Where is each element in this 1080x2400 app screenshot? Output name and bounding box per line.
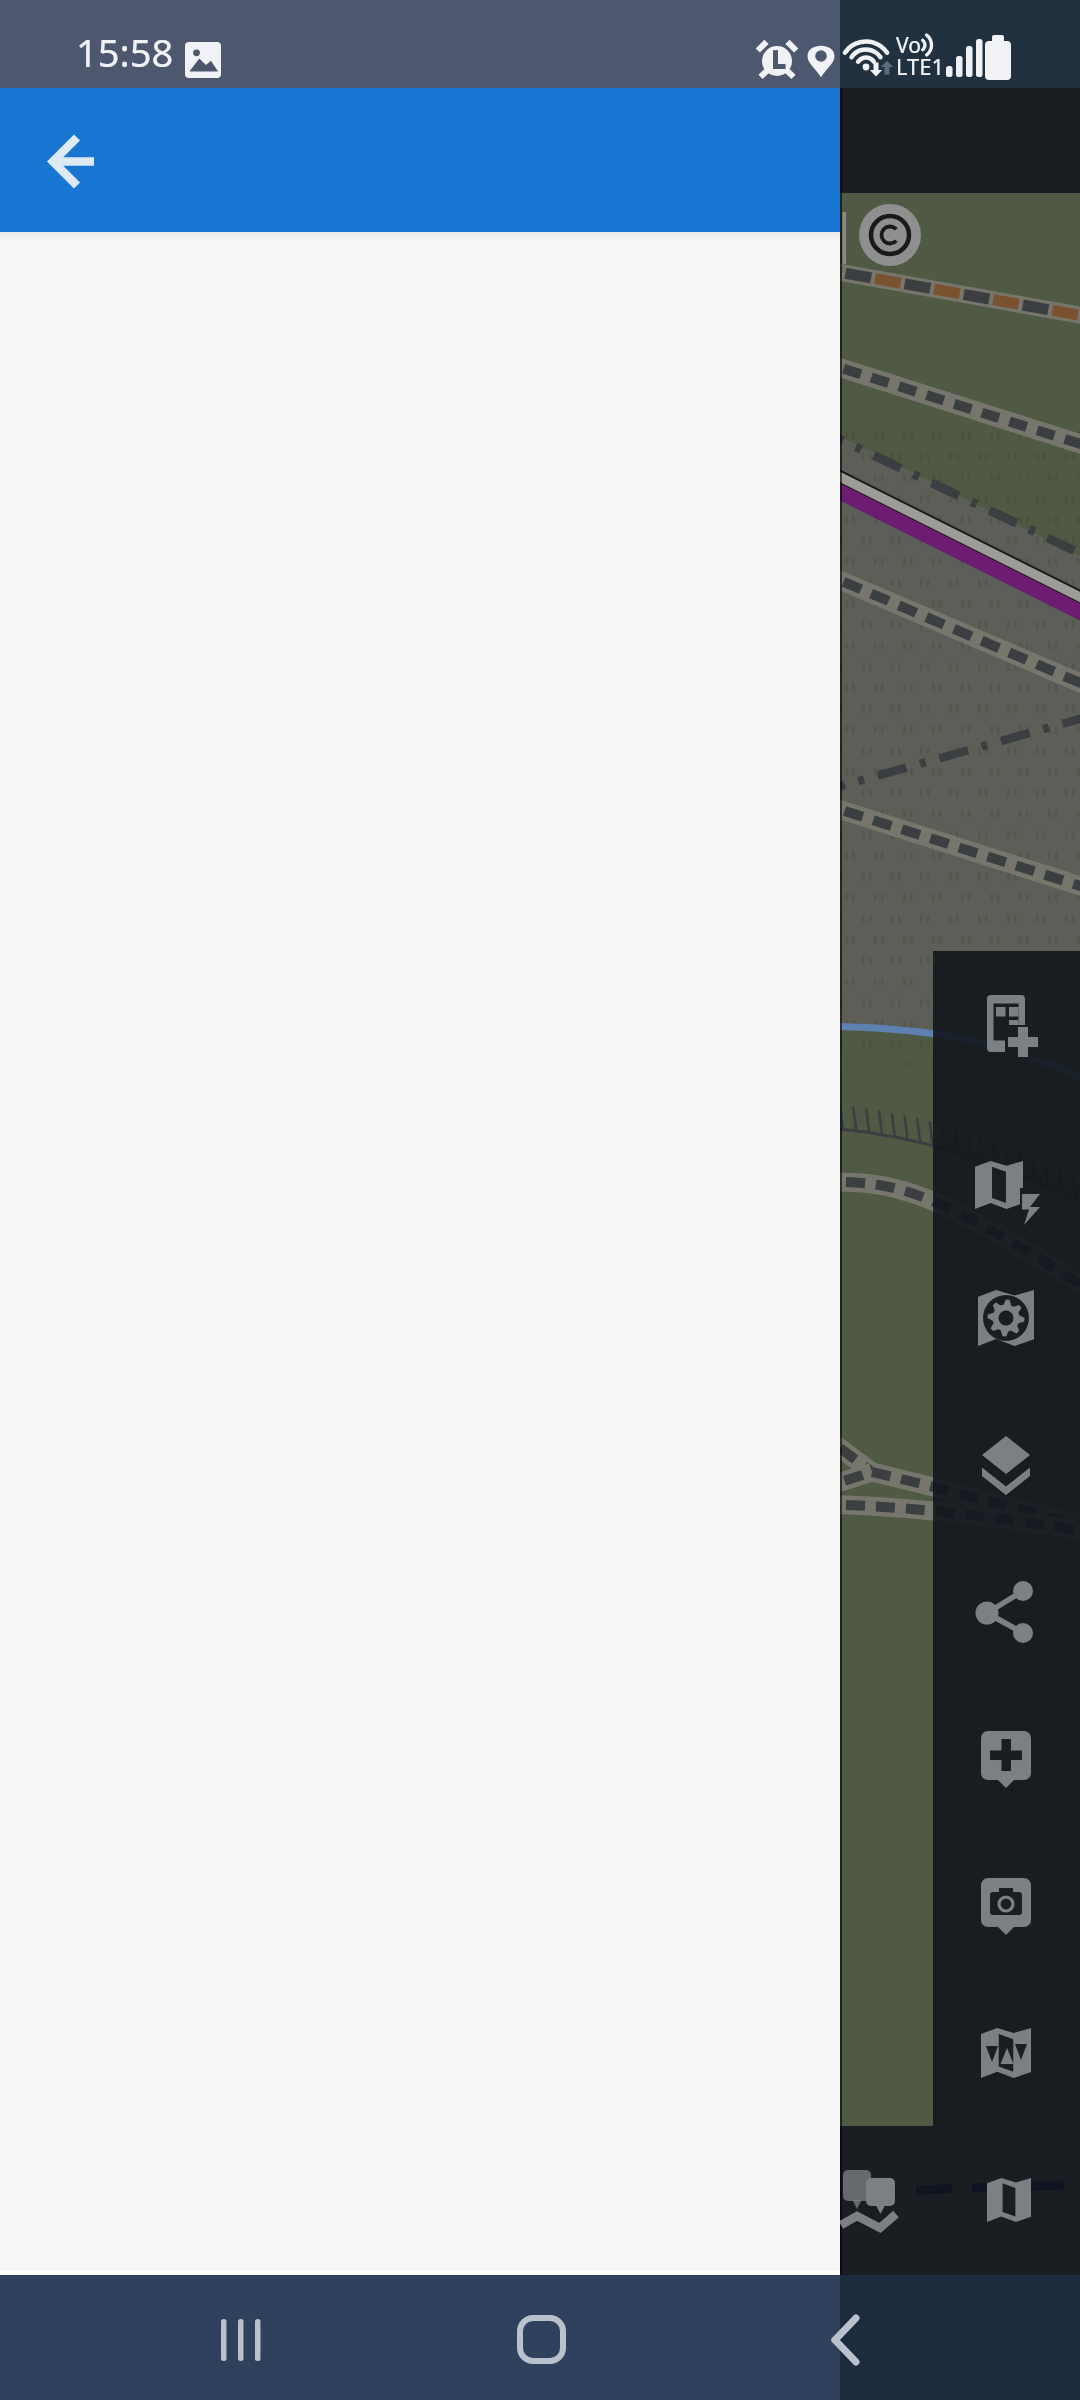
button[interactable]: Home: [480, 2300, 600, 2380]
button[interactable]: Map layers: [958, 1416, 1054, 1512]
button[interactable]: Map copyright information: [859, 203, 921, 265]
button[interactable]: Share location: [958, 1564, 1054, 1660]
staticText: LTE1: [896, 51, 945, 81]
staticText: Vo: [896, 31, 921, 60]
button[interactable]: Configure map: [958, 1270, 1054, 1366]
button[interactable]: Navigate up: [29, 117, 117, 205]
button[interactable]: Add marker: [958, 1709, 1054, 1805]
button[interactable]: Add building: [958, 977, 1054, 1073]
button[interactable]: Back: [790, 2300, 910, 2380]
button[interactable]: Track analysis: [822, 2147, 918, 2243]
button[interactable]: Take photo note: [958, 1856, 1054, 1952]
button[interactable]: Recent apps: [180, 2300, 300, 2380]
staticText: 15:58: [76, 26, 174, 78]
button[interactable]: Contour lines: [958, 2005, 1054, 2101]
button[interactable]: Download map: [958, 1142, 1054, 1238]
button[interactable]: Map: [958, 2147, 1054, 2243]
